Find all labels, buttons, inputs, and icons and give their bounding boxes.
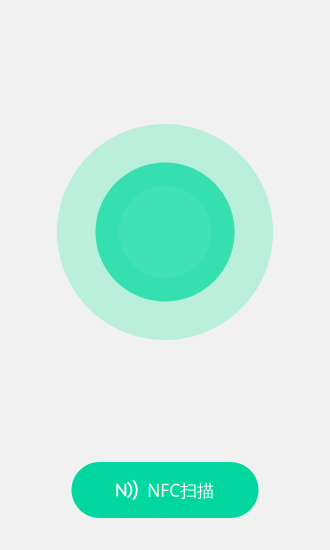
staticText: NFC扫描 <box>147 478 214 501</box>
button[interactable]: NFC扫描 <box>71 462 258 518</box>
